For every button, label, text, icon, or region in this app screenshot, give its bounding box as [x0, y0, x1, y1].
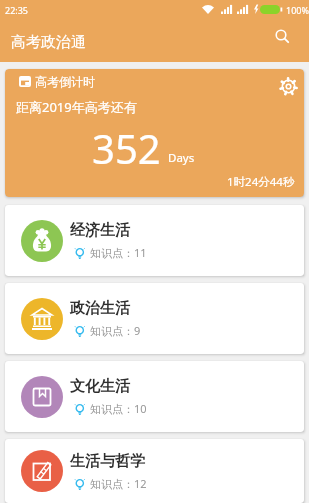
button[interactable]: 生活与哲学 — [5, 439, 304, 503]
button[interactable]: 经济生活 — [5, 205, 304, 276]
staticText: 文化生活 — [70, 377, 130, 396]
staticText: 高考倒计时 — [35, 74, 95, 89]
staticText: 经济生活 — [70, 221, 130, 240]
staticText: 1时24分44秒 — [227, 174, 295, 190]
staticText: 知识点：10 — [90, 401, 147, 416]
staticText: 100% — [286, 4, 309, 16]
staticText: 知识点：9 — [90, 323, 141, 338]
button[interactable] — [275, 73, 301, 99]
staticText: 22:35 — [5, 4, 29, 16]
staticText: 生活与哲学 — [70, 452, 145, 471]
staticText: 政治生活 — [70, 299, 130, 318]
button[interactable]: 文化生活 — [5, 361, 304, 432]
staticText: 知识点：12 — [90, 476, 147, 491]
staticText: 知识点：11 — [90, 245, 147, 260]
staticText: 高考政治通 — [11, 33, 86, 52]
staticText: 距离2019年高考还有 — [16, 98, 137, 116]
button[interactable]: 高考倒计时 — [5, 69, 304, 197]
button[interactable]: 政治生活 — [5, 283, 304, 354]
staticText: Days — [168, 150, 195, 166]
button[interactable] — [268, 24, 298, 54]
staticText: 352 — [92, 121, 161, 175]
